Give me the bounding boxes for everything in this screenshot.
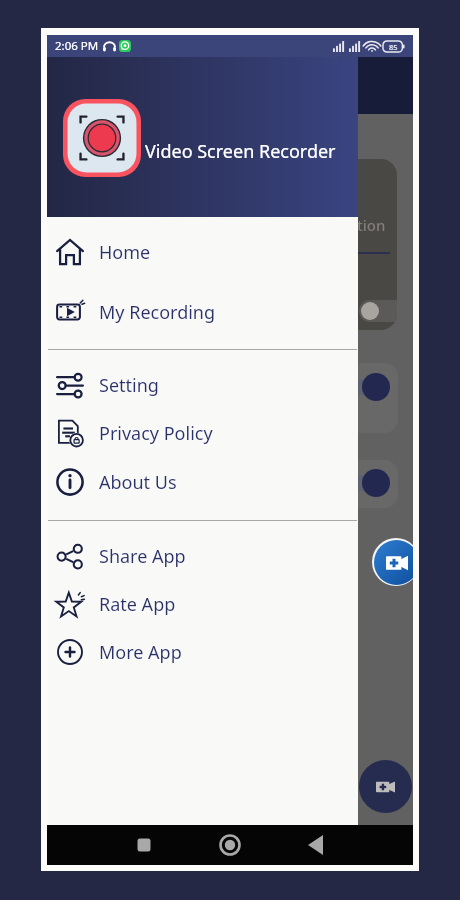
staticText: Privacy Policy <box>99 421 213 446</box>
button[interactable]: Start recording <box>372 538 413 586</box>
button[interactable]: Setting <box>47 361 358 409</box>
button[interactable]: About Us <box>47 458 358 506</box>
button[interactable]: My Recording <box>47 288 358 336</box>
staticText: Setting <box>99 373 159 398</box>
staticText: Share App <box>99 544 186 569</box>
staticText: 85 <box>389 42 398 52</box>
staticText: 2:06 PM <box>55 38 99 54</box>
staticText: Home <box>99 240 151 265</box>
button[interactable]: More App <box>47 628 358 676</box>
button[interactable] <box>67 460 398 508</box>
staticText: More App <box>99 640 182 665</box>
button[interactable]: Privacy Policy <box>47 409 358 457</box>
staticText: Resolution <box>309 215 386 235</box>
button[interactable] <box>67 363 398 433</box>
staticText: Video Screen Recorder <box>145 139 336 164</box>
staticText: Audio Source <box>84 215 173 234</box>
button[interactable]: Record <box>359 760 412 813</box>
staticText: About Us <box>99 470 177 495</box>
button[interactable]: Home <box>47 228 358 276</box>
button[interactable]: Share App <box>47 532 358 580</box>
button[interactable]: Rate App <box>47 580 358 628</box>
staticText: Rate App <box>99 592 176 617</box>
staticText: My Recording <box>99 300 216 325</box>
